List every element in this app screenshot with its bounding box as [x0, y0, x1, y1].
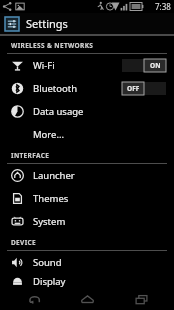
button[interactable]: Bluetooth: [0, 77, 174, 100]
staticText: Sound: [33, 256, 166, 269]
staticText: ON: [150, 61, 161, 70]
staticText: System: [33, 215, 166, 228]
button[interactable]: Back: [14, 288, 54, 310]
staticText: 7:38: [155, 1, 171, 12]
button[interactable]: Themes: [0, 187, 174, 210]
button[interactable]: More...: [0, 123, 174, 146]
staticText: Bluetooth: [33, 82, 122, 95]
button[interactable]: Off: [122, 82, 166, 95]
button[interactable]: On: [122, 59, 166, 72]
staticText: Data usage: [33, 105, 166, 118]
button[interactable]: Wi-Fi: [0, 54, 174, 77]
button[interactable]: Display: [0, 274, 174, 288]
staticText: WIRELESS & NETWORKS: [11, 41, 94, 50]
button[interactable]: Sound: [0, 251, 174, 274]
staticText: Wi-Fi: [33, 59, 122, 72]
button[interactable]: Recents: [121, 288, 161, 310]
button[interactable]: Launcher: [0, 164, 174, 187]
button[interactable]: Settings: [0, 13, 174, 34]
staticText: More...: [33, 128, 166, 141]
other: Settings: [5, 17, 19, 31]
staticText: DEVICE: [11, 238, 37, 247]
staticText: OFF: [127, 84, 140, 93]
staticText: Themes: [33, 192, 166, 205]
button[interactable]: Home: [67, 288, 107, 310]
button[interactable]: Data usage: [0, 100, 174, 123]
staticText: INTERFACE: [11, 151, 50, 160]
staticText: Display: [33, 275, 166, 288]
button[interactable]: System: [0, 210, 174, 233]
staticText: Launcher: [33, 169, 166, 182]
staticText: Settings: [26, 16, 68, 31]
